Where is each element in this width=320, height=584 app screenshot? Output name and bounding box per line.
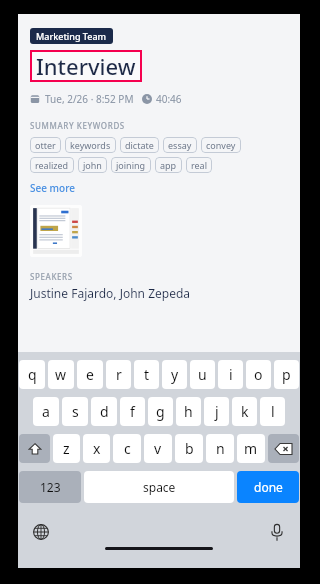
button[interactable]: d: [91, 397, 117, 426]
button[interactable]: realized: [30, 157, 74, 173]
button[interactable]: q: [19, 360, 45, 389]
staticText: n: [216, 439, 225, 458]
staticText: See more: [30, 181, 75, 195]
button[interactable]: joining: [111, 157, 151, 173]
staticText: e: [86, 365, 94, 384]
button[interactable]: u: [190, 360, 215, 389]
staticText: t: [144, 365, 150, 384]
button[interactable]: otter: [30, 137, 61, 153]
staticText: h: [184, 402, 193, 421]
button[interactable]: b: [175, 434, 203, 463]
staticText: f: [130, 402, 135, 421]
staticText: app: [160, 159, 177, 171]
button[interactable]: w: [48, 360, 74, 389]
button[interactable]: n: [206, 434, 234, 463]
button[interactable]: keywords: [65, 137, 116, 153]
button[interactable]: 123: [19, 471, 81, 503]
button[interactable]: o: [246, 360, 271, 389]
staticText: z: [63, 439, 70, 458]
button[interactable]: Switch keyboard language: [28, 519, 54, 545]
staticText: c: [124, 439, 131, 458]
button[interactable]: p: [274, 360, 299, 389]
staticText: l: [271, 402, 275, 421]
button[interactable]: g: [148, 397, 173, 426]
button[interactable]: m: [237, 434, 265, 463]
staticText: y: [171, 365, 179, 384]
button[interactable]: See more: [30, 181, 75, 195]
staticText: Justine Fajardo, John Zepeda: [30, 285, 191, 301]
button[interactable]: y: [162, 360, 187, 389]
staticText: keywords: [70, 139, 111, 151]
staticText: Marketing Team: [36, 30, 107, 42]
button[interactable]: x: [83, 434, 110, 463]
button[interactable]: t: [134, 360, 159, 389]
button[interactable]: Voice input: [264, 519, 290, 545]
staticText: Interview: [36, 51, 136, 81]
button[interactable]: a: [33, 397, 59, 426]
staticText: s: [72, 402, 79, 421]
staticText: w: [55, 365, 67, 384]
staticText: realized: [35, 159, 69, 171]
staticText: i: [229, 365, 233, 384]
button[interactable]: s: [62, 397, 88, 426]
staticText: v: [154, 439, 162, 458]
button[interactable]: dictate: [120, 137, 159, 153]
staticText: g: [156, 402, 165, 421]
button[interactable]: john: [78, 157, 107, 173]
button[interactable]: i: [218, 360, 243, 389]
button[interactable]: done: [237, 471, 299, 503]
staticText: SUMMARY KEYWORDS: [30, 120, 125, 131]
button[interactable]: f: [120, 397, 145, 426]
staticText: 123: [40, 479, 61, 495]
button[interactable]: Interview: [30, 50, 142, 82]
staticText: Tue, 2/26 · 8:52 PM: [45, 92, 134, 106]
button[interactable]: e: [77, 360, 103, 389]
staticText: r: [116, 365, 122, 384]
staticText: 40:46: [156, 92, 182, 106]
staticText: a: [42, 402, 50, 421]
staticText: d: [100, 402, 109, 421]
staticText: john: [83, 159, 102, 171]
button[interactable]: app: [155, 157, 182, 173]
button[interactable]: Shift: [19, 434, 50, 463]
staticText: dictate: [125, 139, 154, 151]
button[interactable]: z: [53, 434, 80, 463]
staticText: x: [93, 439, 101, 458]
button[interactable]: Slide thumbnail: [30, 205, 82, 257]
staticText: real: [191, 159, 207, 171]
staticText: convey: [206, 139, 236, 151]
button[interactable]: essay: [163, 137, 197, 153]
staticText: m: [244, 439, 258, 458]
button[interactable]: v: [144, 434, 172, 463]
button[interactable]: j: [204, 397, 229, 426]
button[interactable]: Marketing Team: [30, 28, 113, 44]
button[interactable]: convey: [201, 137, 241, 153]
button[interactable]: c: [113, 434, 141, 463]
button[interactable]: Backspace: [268, 434, 299, 463]
staticText: q: [28, 365, 37, 384]
button[interactable]: space: [84, 471, 234, 503]
button[interactable]: h: [176, 397, 201, 426]
staticText: p: [282, 365, 291, 384]
staticText: b: [185, 439, 194, 458]
staticText: space: [143, 479, 176, 495]
staticText: o: [254, 365, 263, 384]
staticText: joining: [116, 159, 146, 171]
staticText: k: [241, 402, 249, 421]
button[interactable]: l: [260, 397, 285, 426]
staticText: SPEAKERS: [30, 271, 73, 282]
staticText: essay: [168, 139, 192, 151]
staticText: done: [254, 479, 283, 495]
staticText: u: [198, 365, 207, 384]
staticText: j: [215, 402, 219, 421]
button[interactable]: real: [186, 157, 212, 173]
button[interactable]: r: [106, 360, 131, 389]
staticText: otter: [35, 139, 56, 151]
button[interactable]: k: [232, 397, 257, 426]
